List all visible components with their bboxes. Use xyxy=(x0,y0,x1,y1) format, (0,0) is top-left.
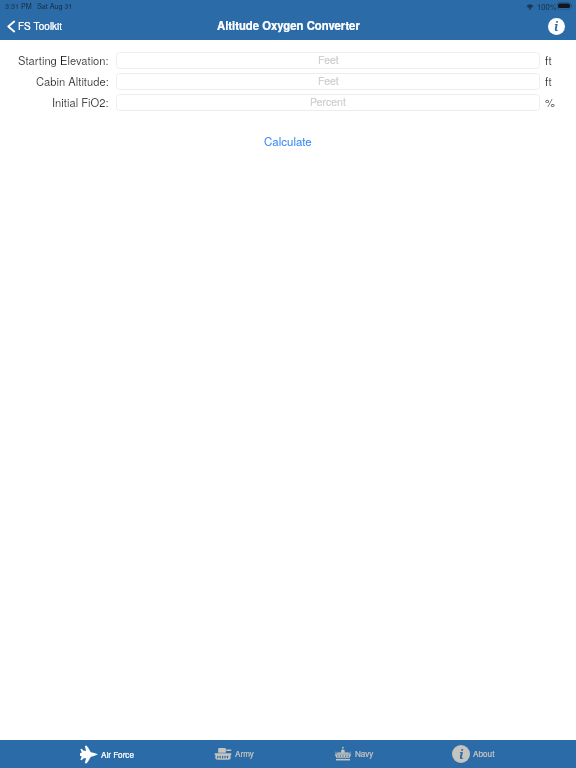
button[interactable]: Army xyxy=(168,740,290,768)
staticText: Cabin Altitude: xyxy=(36,73,109,89)
staticText: About xyxy=(473,748,495,760)
button[interactable]: i xyxy=(412,740,534,768)
staticText: 3:31 PM xyxy=(5,1,32,11)
staticText: Feet xyxy=(318,73,339,88)
button[interactable]: Air Force xyxy=(46,740,168,768)
staticText: Calculate xyxy=(264,133,312,149)
staticText: Percent xyxy=(310,94,346,109)
staticText: 100% xyxy=(537,1,557,12)
staticText: Starting Elevation: xyxy=(18,52,109,68)
button[interactable]: Feet xyxy=(116,52,540,69)
staticText: Sat Aug 31 xyxy=(37,1,73,11)
button[interactable]: Calculate xyxy=(246,129,330,153)
staticText: ft xyxy=(545,73,552,89)
button[interactable]: Percent xyxy=(116,94,540,111)
button[interactable]: Info xyxy=(548,18,565,35)
staticText: Army xyxy=(235,748,254,760)
staticText: Navy xyxy=(355,748,374,760)
button[interactable]: Navy xyxy=(290,740,412,768)
staticText: Feet xyxy=(318,52,339,67)
staticText: % xyxy=(545,94,555,110)
staticText: Altitude Oxygen Converter xyxy=(217,17,360,33)
staticText: i xyxy=(459,745,464,763)
button[interactable]: Feet xyxy=(116,73,540,90)
staticText: i xyxy=(554,18,559,35)
staticText: ft xyxy=(545,52,552,68)
staticText: Initial FiO2: xyxy=(52,94,109,110)
staticText: FS Toolkit xyxy=(18,19,63,33)
button[interactable]: FS Toolkit xyxy=(0,15,71,37)
staticText: Air Force xyxy=(101,749,135,761)
